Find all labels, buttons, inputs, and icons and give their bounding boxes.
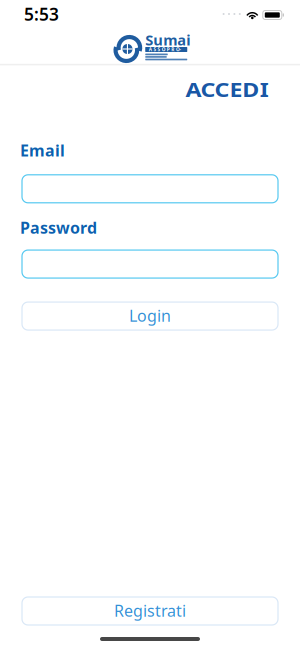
staticText: Email — [20, 140, 65, 161]
staticText: 5:53 — [24, 2, 59, 25]
staticText: Sumai — [145, 30, 190, 50]
staticText: Login — [129, 305, 171, 326]
button[interactable] — [22, 175, 278, 203]
staticText: Password — [20, 217, 97, 238]
button[interactable]: Registrati — [22, 597, 278, 625]
button[interactable]: Login — [22, 302, 278, 330]
staticText: Registrati — [114, 600, 186, 621]
button[interactable] — [22, 250, 278, 278]
staticText: ACCEDI — [197, 76, 269, 103]
staticText: ASSOPROF — [127, 42, 205, 57]
